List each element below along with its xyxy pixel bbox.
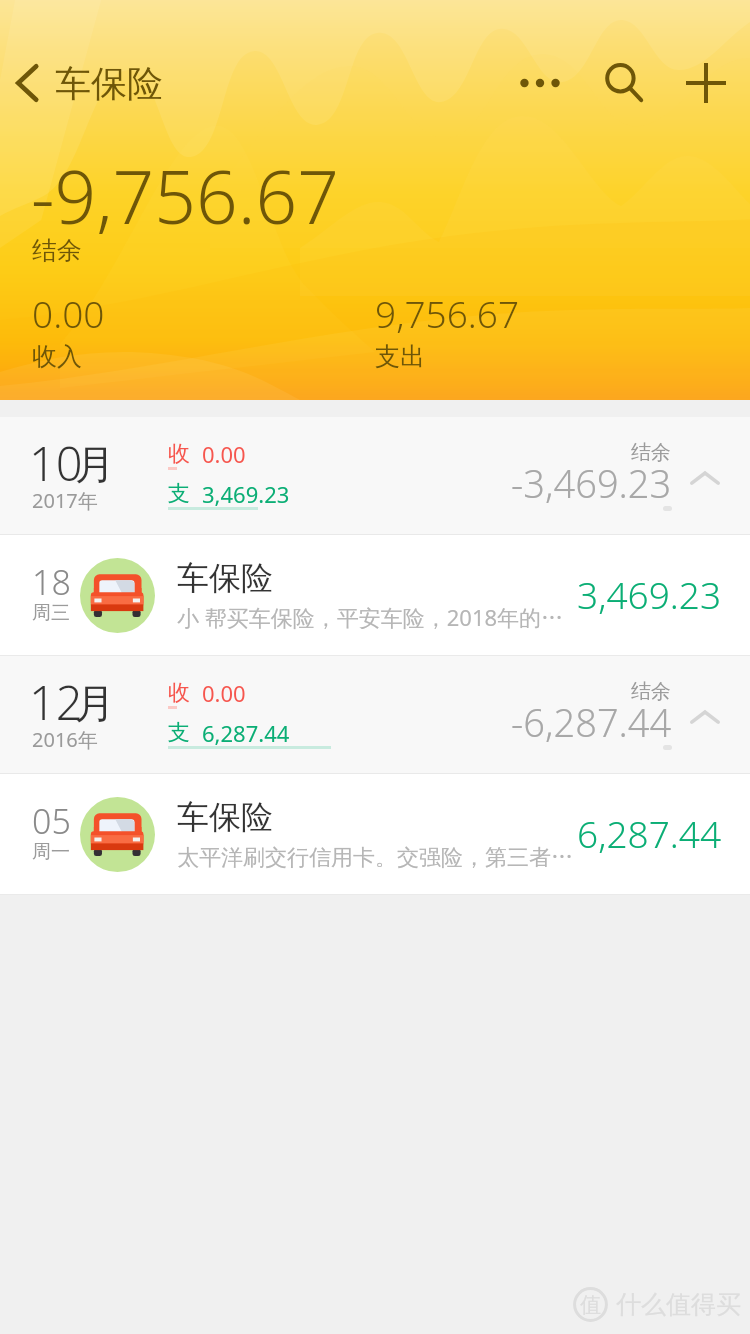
staticText: 收入 — [32, 341, 82, 372]
staticText: 12 — [29, 670, 83, 734]
button[interactable]: 12 — [0, 656, 750, 774]
staticText: 车保险 — [177, 558, 273, 598]
button[interactable]: 18 — [0, 535, 750, 656]
staticText: 收 — [168, 679, 190, 707]
staticText: 什么值得买 — [616, 1289, 741, 1320]
button[interactable]: Collapse month — [683, 457, 727, 501]
staticText: 车保险 — [177, 797, 273, 837]
button[interactable]: Search — [588, 47, 660, 119]
staticText: 0.00 — [32, 288, 105, 338]
button[interactable]: 10 — [0, 417, 750, 535]
staticText: 支 — [168, 480, 190, 508]
staticText: 周三 — [32, 601, 70, 625]
staticText: 小 帮买车保险，平安车险，2018年的，交强… — [177, 602, 575, 632]
staticText: 支出 — [375, 341, 425, 372]
staticText: 6,287.44 — [577, 808, 722, 858]
staticText: 2017年 — [32, 487, 98, 514]
staticText: 值 — [580, 1292, 601, 1318]
staticText: 9,756.67 — [375, 288, 520, 338]
button[interactable]: Add — [668, 45, 744, 121]
staticText: 支 — [168, 719, 190, 747]
staticText: 18 — [32, 559, 71, 605]
staticText: 月 — [75, 678, 115, 728]
staticText: 收 — [168, 440, 190, 468]
staticText: -3,469.23 — [511, 457, 672, 509]
staticText: -6,287.44 — [511, 696, 672, 748]
button[interactable]: 车保险 — [0, 41, 163, 125]
staticText: 10 — [29, 431, 83, 495]
button[interactable]: 05 — [0, 774, 750, 895]
staticText: 结余 — [631, 679, 671, 704]
staticText: 结余 — [631, 440, 671, 465]
button[interactable]: Collapse month — [683, 696, 727, 740]
staticText: 结余 — [32, 235, 82, 266]
staticText: 05 — [32, 798, 71, 844]
staticText: 3,469.23 — [202, 479, 290, 509]
staticText: 3,469.23 — [577, 569, 722, 619]
button[interactable]: More options — [504, 47, 576, 119]
staticText: 车保险 — [55, 61, 163, 106]
staticText: 6,287.44 — [202, 718, 290, 748]
staticText: 月 — [75, 439, 115, 489]
staticText: 周一 — [32, 840, 70, 864]
staticText: -9,756.67 — [31, 146, 339, 245]
staticText: 太平洋刷交行信用卡。交强险，第三者100万，… — [177, 841, 575, 871]
staticText: 0.00 — [202, 678, 246, 708]
staticText: 2016年 — [32, 726, 98, 753]
staticText: 0.00 — [202, 439, 246, 469]
